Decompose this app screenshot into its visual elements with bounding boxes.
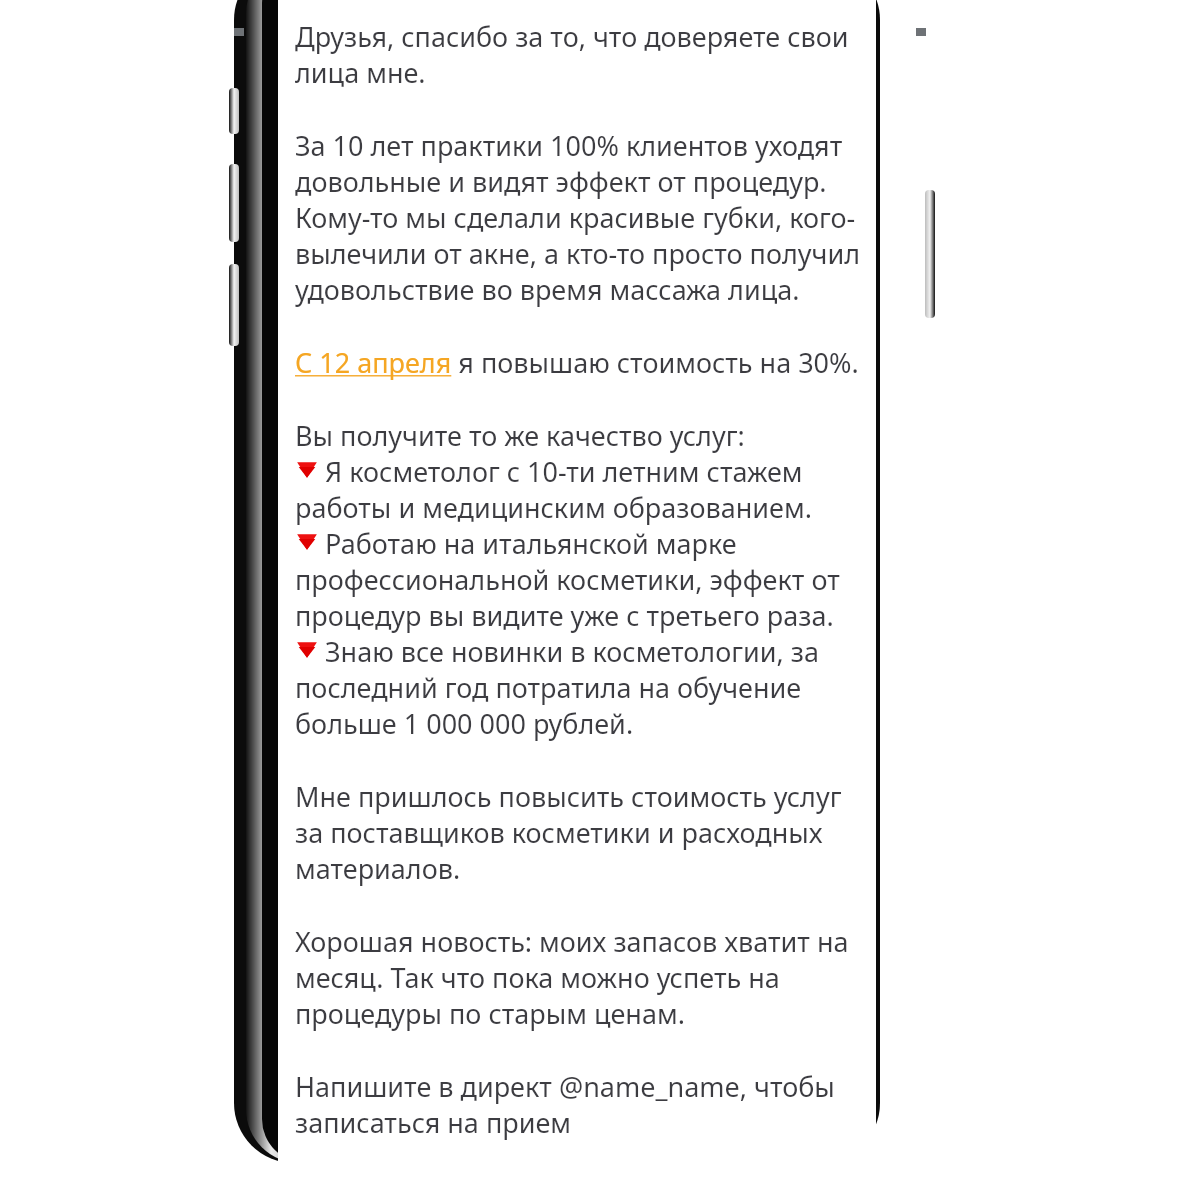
staticText: лица мне. (295, 54, 426, 90)
staticText: больше 1 000 000 рублей. (295, 705, 634, 741)
staticText: Знаю все новинки в косметологии, за (325, 633, 819, 669)
staticText: За 10 лет практики 100% клиентов уходят (295, 127, 843, 163)
staticText: работы и медицинским образованием. (295, 489, 812, 525)
button[interactable]: Volume up (229, 164, 239, 242)
staticText: Друзья, спасибо за то, что доверяете сво… (295, 18, 849, 54)
staticText: Хорошая новость: моих запасов хватит на (295, 923, 849, 959)
staticText: материалов. (295, 850, 461, 886)
staticText: процедур вы видите уже с третьего раза. (295, 597, 834, 633)
staticText: профессиональной косметики, эффект от (295, 561, 840, 597)
staticText: Напишите в директ @name_name, чтобы (295, 1068, 835, 1104)
staticText: месяц. Так что пока можно успеть на (295, 959, 780, 995)
button[interactable]: Mute switch (229, 88, 239, 134)
staticText: за поставщиков косметики и расходных (295, 814, 823, 850)
staticText: записаться на прием (295, 1104, 572, 1140)
button[interactable]: С 12 апреля я повышаю стоимость на 30%. (295, 344, 859, 380)
staticText: процедуры по старым ценам. (295, 995, 685, 1031)
staticText: Вы получите то же качество услуг: (295, 417, 745, 453)
staticText: довольные и видят эффект от процедур. (295, 163, 827, 199)
button[interactable]: Volume down (229, 264, 239, 346)
staticText: последний год потратила на обучение (295, 669, 802, 705)
staticText: удовольствие во время массажа лица. (295, 271, 800, 307)
staticText: Кому-то мы сделали красивые губки, кого-… (295, 199, 866, 235)
staticText: Я косметолог с 10-ти летним стажем (325, 453, 803, 489)
staticText: вылечили от акне, а кто-то просто получи… (295, 235, 861, 271)
staticText: Работаю на итальянской марке (325, 525, 737, 561)
button[interactable]: Power (925, 190, 935, 318)
staticText: Мне пришлось повысить стоимость услуг из… (295, 778, 866, 814)
